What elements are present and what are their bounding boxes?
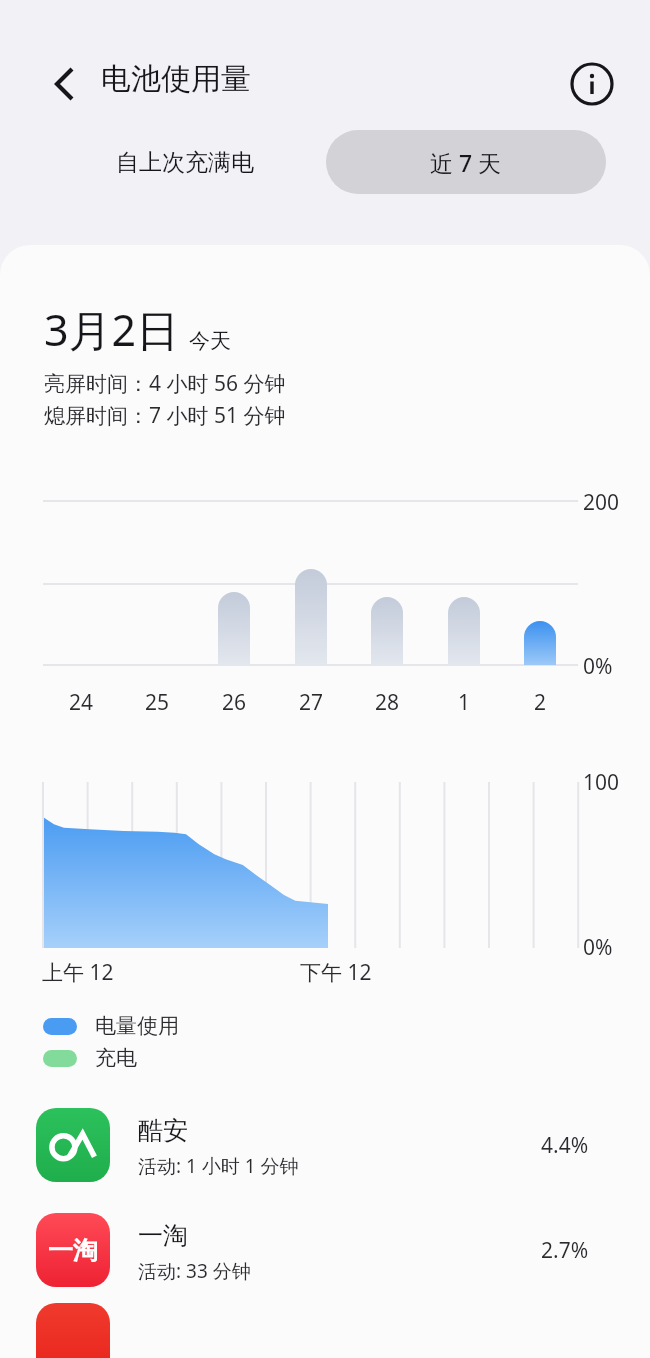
button[interactable]: 一淘 xyxy=(0,1200,650,1300)
staticText: 25 xyxy=(145,688,170,717)
staticText: 一淘 xyxy=(48,1235,98,1266)
button[interactable]: Information xyxy=(566,58,618,110)
staticText: 近 7 天 xyxy=(430,147,502,178)
staticText: 上午 12 xyxy=(42,958,114,987)
staticText: 活动: 33 分钟 xyxy=(138,1258,251,1284)
staticText: 1 xyxy=(458,688,471,717)
staticText: 2.7% xyxy=(541,1236,589,1265)
staticText: 4.4% xyxy=(541,1131,589,1160)
staticText: 2 xyxy=(534,688,547,717)
staticText: 熄屏时间：7 小时 51 分钟 xyxy=(44,401,286,430)
staticText: 0% xyxy=(583,933,613,962)
staticText: 下午 12 xyxy=(300,958,372,987)
button[interactable]: 酷安 xyxy=(0,1095,650,1195)
button[interactable]: 近 7 天 xyxy=(326,130,606,194)
staticText: 电池使用量 xyxy=(101,60,251,98)
staticText: 200 xyxy=(583,488,620,517)
staticText: 100 xyxy=(583,768,620,797)
button[interactable]: Back xyxy=(36,56,92,112)
staticText: 亮屏时间：4 小时 56 分钟 xyxy=(44,369,286,398)
staticText: 24 xyxy=(69,688,94,717)
staticText: 27 xyxy=(299,688,324,717)
staticText: 自上次充满电 xyxy=(116,148,254,177)
staticText: 电量使用 xyxy=(95,1013,179,1039)
button[interactable]: 自上次充满电 xyxy=(44,130,326,194)
staticText: 26 xyxy=(222,688,247,717)
staticText: 酷安 xyxy=(138,1115,188,1146)
staticText: 一淘 xyxy=(138,1220,188,1251)
staticText: 3月2日 xyxy=(44,300,180,359)
staticText: 28 xyxy=(375,688,400,717)
staticText: 充电 xyxy=(95,1045,137,1071)
staticText: 0% xyxy=(583,652,613,681)
staticText: 今天 xyxy=(189,328,231,354)
staticText: 活动: 1 小时 1 分钟 xyxy=(138,1153,299,1179)
